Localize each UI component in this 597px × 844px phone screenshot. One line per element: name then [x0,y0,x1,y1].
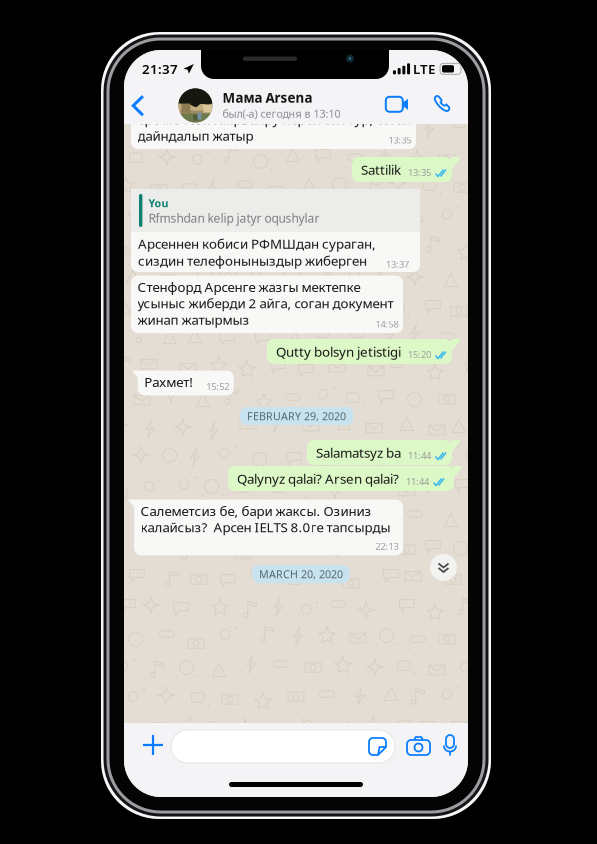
staticText: FEBRUARY 29, 2020 [247,409,346,423]
staticText: MARCH 20, 2020 [259,567,343,581]
staticText: дайндалып жатыр [137,127,253,144]
staticText: был(-а) сегодня в 13:10 [222,106,340,121]
staticText: жинап жатырмыз [137,311,249,328]
staticText: Рахмет! [144,373,193,391]
staticText: 13:37 [386,258,409,270]
staticText: Salamatsyz ba [316,444,401,461]
button[interactable]: Back [121,87,152,125]
staticText: 15:20 [408,348,431,361]
staticText: Арсеннен кобиси РФМШдан сураган, [138,235,376,252]
staticText: Qutty bolsyn jetistigi [276,343,401,360]
staticText: 22:13 [376,540,399,552]
staticText: 13:35 [388,134,411,146]
staticText: ере ме тезк тапрвалру нерен сол тур, сог… [137,110,411,128]
button[interactable]: Мама Arsena [177,87,340,123]
staticText: 14:58 [375,318,398,330]
staticText: Салеметсиз бе, бари жаксы. Озиниз [141,502,372,520]
button[interactable]: Voice message [434,726,466,765]
staticText: сиздин телефоныныздыр жиберген [138,252,367,269]
staticText: 11:44 [408,449,431,462]
staticText: ере ме тезк тапрвалру нерен сол тур, сог… [137,94,411,112]
staticText: 15:52 [206,380,229,393]
staticText: усыныс жиберди 2 айга, соган документ [137,294,393,312]
staticText: 13:35 [408,166,431,179]
button[interactable]: Voice call [423,85,460,122]
staticText: Qalynyz qalai? Arsen qalai? [237,470,399,487]
button[interactable]: Video call [376,87,418,121]
staticText: калайсыз? Арсен IELTS 8.0ге тапсырды [141,518,391,536]
staticText: LTE [413,60,435,78]
staticText: Стенфорд Арсенге жазгы мектепке [137,278,360,296]
staticText: Sattilik [361,161,401,178]
button[interactable]: Scroll to bottom [430,554,457,581]
button[interactable]: Attach [133,725,173,765]
staticText: Rfmshdan kelip jatyr oqushylar [148,210,319,226]
button[interactable]: Stickers [368,737,387,756]
staticText: You [148,196,168,210]
staticText: 11:44 [406,475,429,488]
button[interactable]: Camera [398,727,439,764]
staticText: Мама Arsena [222,89,312,106]
staticText: 21:37 [142,60,178,78]
